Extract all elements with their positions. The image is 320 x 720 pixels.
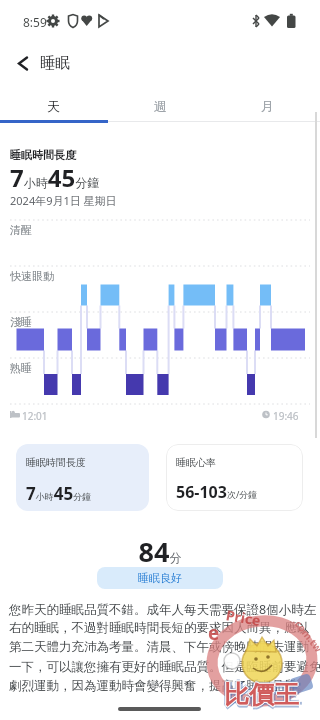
staticText: 比價王 (223, 679, 298, 710)
staticText: 睡眠心率 (176, 456, 216, 469)
staticText: 睡眠時間長度 (26, 456, 86, 469)
staticText: 比價王 (224, 679, 299, 710)
staticText: e (208, 620, 220, 646)
button[interactable]: 睡眠良好 (97, 567, 223, 589)
staticText: .com.tw (290, 615, 320, 655)
staticText: 12:01 (22, 409, 48, 423)
staticText: 比價王 (222, 679, 297, 710)
staticText: 比價王 (224, 678, 299, 709)
staticText: 您昨天的睡眠品質不錯。成年人每天需要保證8個小時左 (9, 601, 317, 618)
staticText: 2024年9月1日 星期日 (10, 193, 117, 208)
staticText: 睡眠時間長度 (10, 148, 76, 162)
staticText: 熟睡 (10, 361, 32, 375)
staticText: 比價王 (224, 677, 299, 708)
staticText: 比價王 (224, 682, 299, 713)
button[interactable] (8, 50, 48, 76)
button[interactable]: 睡眠時間長度 (16, 444, 149, 511)
staticText: 8:59 (23, 14, 47, 30)
staticText: 清醒 (10, 223, 32, 237)
staticText: 快速眼動 (10, 269, 54, 283)
button[interactable]: 月 (214, 94, 320, 122)
staticText: 56-103次/分鐘 (176, 481, 258, 503)
staticText: 比價王 (225, 679, 300, 710)
staticText: 劇烈運動，因為運動時會變得興奮，提高了睡眠品質。 (9, 678, 309, 694)
staticText: 月 (261, 98, 274, 114)
staticText: 右的睡眠，不過對睡眠時間長短的要求因人而異，應以 (9, 620, 309, 636)
staticText: Price (225, 605, 262, 630)
staticText: 睡眠 (40, 54, 70, 73)
staticText: 19:46 (273, 409, 299, 423)
staticText: 淺睡 (10, 315, 32, 329)
staticText: 比價王 (224, 680, 299, 711)
staticText: 7小時45分鐘 (10, 161, 100, 194)
staticText: 84分 (0, 533, 320, 720)
staticText: 一下，可以讓您擁有更好的睡眠品質。但是臨睡前要避免 (9, 659, 320, 675)
staticText: 睡眠良好 (138, 571, 182, 585)
staticText: 週 (154, 98, 167, 114)
staticText: 第二天體力充沛為考量。清晨、下午或傍晚時間去運動 (9, 639, 309, 655)
button[interactable]: 週 (107, 94, 214, 122)
button[interactable]: 睡眠心率 (166, 444, 303, 511)
staticText: 天 (47, 98, 60, 114)
button[interactable]: 天 (0, 94, 107, 122)
staticText: 7小時45分鐘 (26, 482, 92, 505)
staticText: 比價王 (227, 679, 302, 710)
